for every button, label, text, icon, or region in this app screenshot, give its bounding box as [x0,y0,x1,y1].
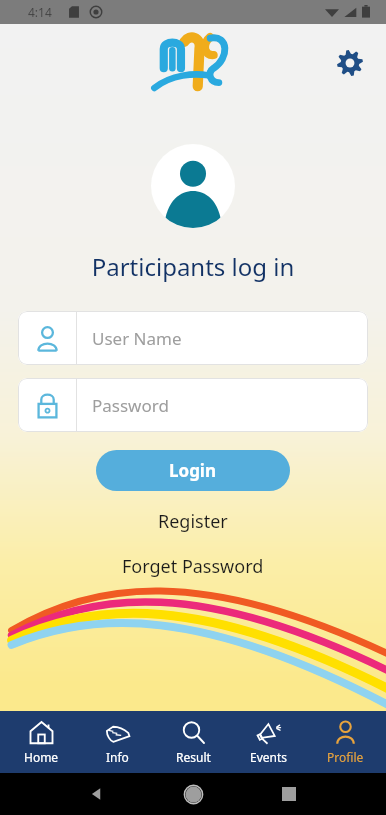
staticText: Register [158,509,228,534]
staticText: Password [92,394,169,417]
staticText: Participants log in [0,250,386,283]
staticText: 4:14 [28,4,52,20]
button[interactable]: Home [6,711,76,773]
button[interactable]: Forget Password [110,552,276,581]
staticText: Result [176,749,211,765]
staticText: Events [250,749,288,765]
staticText: Home [24,749,59,765]
staticText: Info [106,749,129,765]
staticText: Forget Password [122,554,264,579]
button[interactable]: Info [82,711,152,773]
button[interactable]: Events [234,711,304,773]
staticText: Login [169,459,217,482]
button[interactable]: User Name [18,311,368,365]
button[interactable]: Settings [328,41,372,85]
button[interactable]: Login [96,450,290,491]
staticText: Profile [327,749,364,765]
button[interactable]: Register [146,507,240,536]
button[interactable]: Password [18,378,368,432]
button[interactable]: Result [158,711,228,773]
staticText: User Name [92,327,182,350]
button[interactable]: Profile [310,711,380,773]
